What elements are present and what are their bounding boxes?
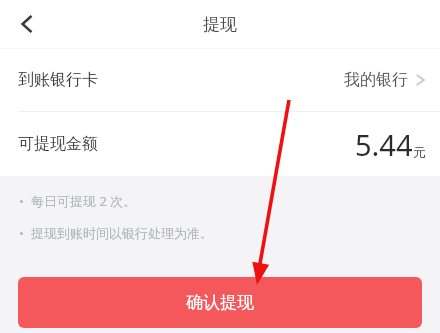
staticText: 元 (413, 144, 426, 160)
staticText: 提现 (203, 14, 237, 35)
staticText: 5.44 (355, 125, 413, 164)
staticText: 每日可提现 2 次。 (31, 192, 137, 210)
staticText: 可提现金额 (18, 134, 98, 154)
button[interactable]: 到账银行卡 (0, 49, 440, 111)
staticText: 到账银行卡 (18, 70, 98, 90)
staticText: 提现到账时间以银行处理为准。 (31, 225, 213, 241)
staticText: 我的银行 (344, 70, 408, 90)
staticText: 确认提现 (186, 292, 254, 313)
button[interactable]: Back (0, 0, 54, 48)
button[interactable]: 确认提现 (18, 277, 422, 328)
